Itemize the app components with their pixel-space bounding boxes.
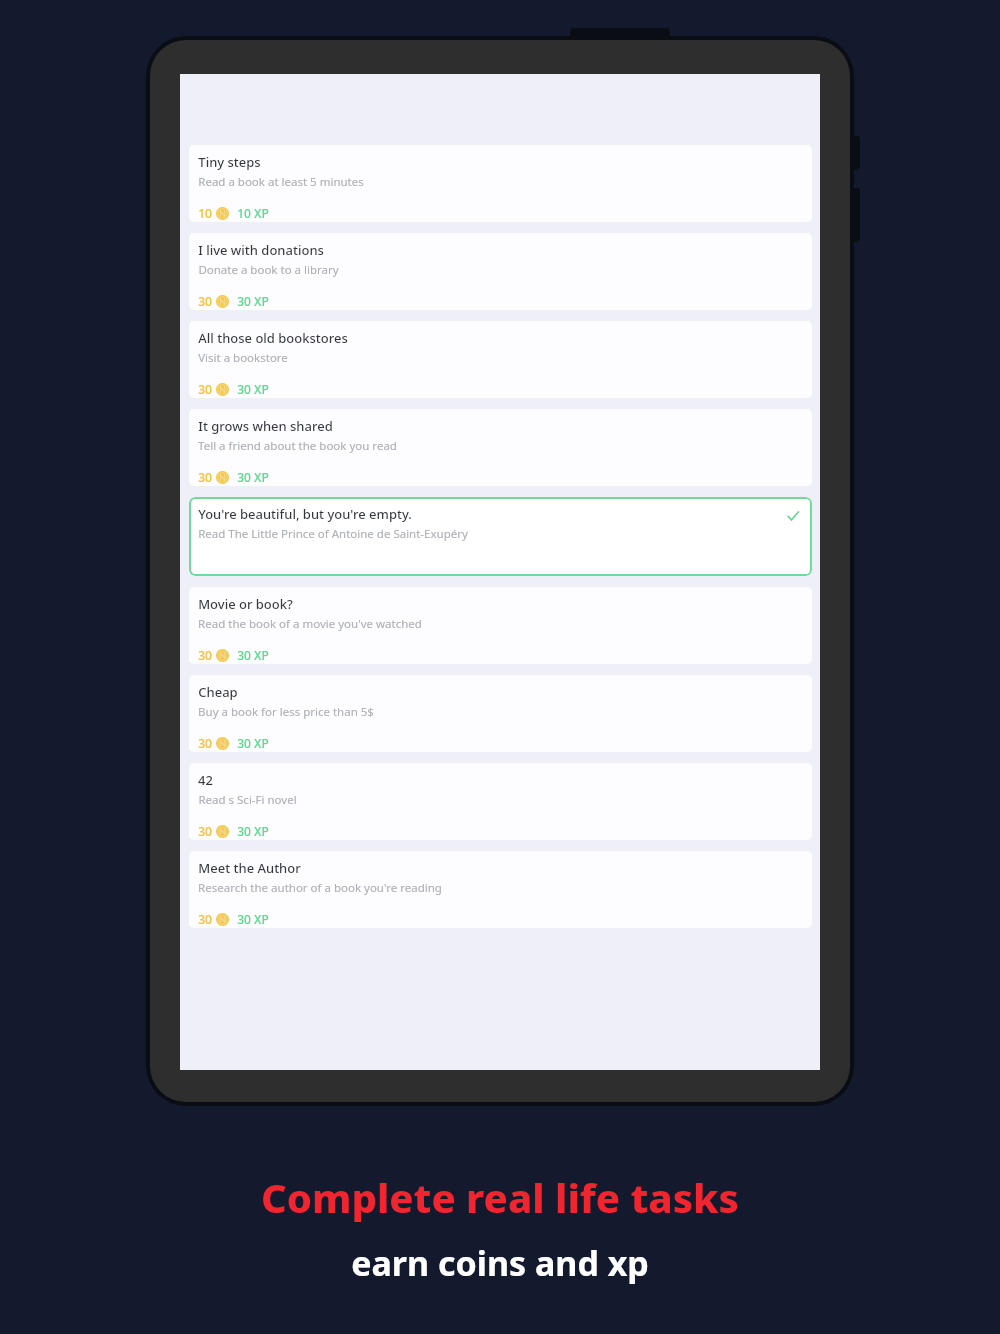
staticText: 30 XP (237, 735, 269, 751)
button[interactable]: I live with donations (189, 233, 812, 310)
button[interactable]: Tiny steps (189, 145, 812, 222)
staticText: Tiny steps (198, 153, 261, 171)
button[interactable]: 42 (189, 763, 812, 840)
button[interactable]: Cheap (189, 675, 812, 752)
staticText: Donate a book to a library (198, 262, 339, 278)
staticText: 30 XP (237, 823, 269, 839)
staticText: 10 (198, 205, 212, 221)
button[interactable]: Meet the Author (189, 851, 812, 928)
button[interactable]: It grows when shared (189, 409, 812, 486)
staticText: All those old bookstores (198, 329, 348, 347)
staticText: Read a book at least 5 minutes (198, 174, 364, 190)
staticText: 30 (198, 381, 212, 397)
staticText: 30 (198, 735, 212, 751)
staticText: Visit a bookstore (198, 350, 288, 366)
staticText: 30 (198, 469, 212, 485)
staticText: 30 XP (237, 293, 269, 309)
staticText: 42 (198, 771, 213, 789)
staticText: Complete real life tasks (261, 1170, 739, 1224)
staticText: Read The Little Prince of Antoine de Sai… (198, 526, 468, 542)
staticText: Meet the Author (198, 859, 301, 877)
staticText: 10 XP (237, 205, 269, 221)
button[interactable]: Movie or book? (189, 587, 812, 664)
staticText: You're beautiful, but you're empty. (198, 505, 412, 523)
staticText: Buy a book for less price than 5$ (198, 704, 374, 720)
staticText: 30 XP (237, 911, 269, 927)
button[interactable]: All those old bookstores (189, 321, 812, 398)
staticText: 30 XP (237, 381, 269, 397)
staticText: 30 (198, 823, 212, 839)
staticText: 30 (198, 647, 212, 663)
staticText: Movie or book? (198, 595, 293, 613)
button[interactable]: You're beautiful, but you're empty. (189, 497, 812, 576)
staticText: Read the book of a movie you've watched (198, 616, 422, 632)
staticText: earn coins and xp (351, 1240, 649, 1286)
staticText: Cheap (198, 683, 238, 701)
staticText: 30 XP (237, 469, 269, 485)
staticText: 30 (198, 293, 212, 309)
staticText: 30 XP (237, 647, 269, 663)
staticText: Tell a friend about the book you read (198, 438, 397, 454)
staticText: 30 (198, 911, 212, 927)
staticText: It grows when shared (198, 417, 333, 435)
staticText: Research the author of a book you're rea… (198, 880, 442, 896)
staticText: I live with donations (198, 241, 324, 259)
button[interactable]: Completed (784, 507, 802, 525)
staticText: Read s Sci-Fi novel (198, 792, 297, 808)
